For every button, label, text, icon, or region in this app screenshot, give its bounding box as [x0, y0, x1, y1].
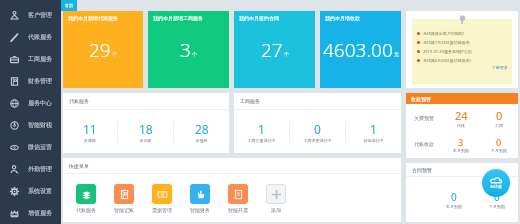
button[interactable]: 我的本月新增代账服务 [63, 11, 143, 88]
staticText: 无忧账 [490, 184, 502, 189]
staticText: 未建账 [63, 138, 117, 143]
staticText: 3 [180, 37, 191, 63]
button[interactable]: 客户管理 [0, 4, 61, 26]
staticText: 0 [314, 121, 321, 137]
staticText: 添加 [257, 207, 295, 213]
staticText: 我的本月新增工商服务 [153, 15, 203, 21]
staticText: 我的本月新增代账服务 [68, 15, 118, 21]
staticText: 0 [451, 190, 457, 204]
staticText: 下月到期 [489, 204, 505, 209]
staticText: 个 [112, 51, 117, 57]
staticText: 4603.00 [323, 37, 393, 63]
staticText: 元 [394, 51, 399, 57]
button[interactable]: 28 [174, 121, 229, 143]
staticText: 代账收款 [414, 141, 434, 147]
staticText: 工商变更进行中 [290, 138, 345, 143]
staticText: 收款预警 [411, 96, 431, 102]
button[interactable]: 1 [346, 121, 401, 143]
button[interactable]: 无忧账6月20日新功能发布! [417, 56, 471, 65]
button[interactable]: 智能记账 [105, 184, 143, 213]
staticText: 票据管理 [143, 207, 181, 213]
staticText: 无忧账推出客户功能啦! [423, 31, 465, 36]
staticText: 我的本月签约合同 [239, 15, 279, 21]
button[interactable]: 服务中心 [0, 92, 61, 114]
staticText: 工商服务 [28, 55, 52, 63]
button[interactable]: 系统设置 [0, 180, 61, 202]
button[interactable]: 代账服务 [0, 26, 61, 48]
button[interactable]: 智能财务 [181, 184, 219, 213]
staticText: 11 [83, 121, 97, 137]
staticText: 其他进行中 [346, 138, 401, 143]
staticText: 29 [89, 37, 111, 63]
button[interactable]: 首页 [61, 0, 77, 11]
button[interactable]: 我的本月新增工商服务 [148, 11, 229, 88]
staticText: 0 [494, 190, 500, 204]
button[interactable]: 微信运营 [0, 136, 61, 158]
button[interactable]: 智能财税 [0, 114, 61, 136]
staticText: 微信运营 [28, 143, 52, 151]
staticText: 未报税 [174, 138, 229, 143]
staticText: 2019-07-20服务器维护公告 [423, 49, 472, 54]
staticText: 智能记账 [105, 207, 143, 213]
staticText: 欠费预警 [414, 115, 434, 121]
button[interactable]: 无忧账推出客户功能啦! [417, 29, 465, 38]
staticText: 本月到期 [446, 204, 462, 209]
staticText: 个 [192, 51, 197, 57]
staticText: 1 [258, 121, 265, 137]
button[interactable]: 无忧账7月25日新功能发布 [417, 38, 470, 47]
staticText: 智能财务 [181, 207, 219, 213]
staticText: 18 [139, 121, 153, 137]
staticText: 无忧账7月25日新功能发布 [423, 40, 470, 45]
button[interactable]: 18 [118, 121, 173, 143]
staticText: 代账服务 [67, 207, 105, 213]
staticText: 智能开票 [219, 207, 257, 213]
staticText: 24 [455, 108, 468, 123]
button[interactable]: 2019-07-20服务器维护公告 [417, 47, 472, 56]
staticText: 代账服务 [28, 33, 52, 41]
staticText: 工商 [495, 123, 503, 128]
button[interactable]: 财务管理 [0, 70, 61, 92]
staticText: 工商服务 [240, 98, 260, 104]
staticText: 下月到期 [491, 148, 507, 153]
button[interactable]: 智能开票 [219, 184, 257, 213]
button[interactable]: 工商服务 [0, 48, 61, 70]
button[interactable]: 外勤管理 [0, 158, 61, 180]
staticText: 0 [496, 136, 502, 148]
button[interactable]: 添加 [257, 184, 295, 213]
staticText: 27 [261, 37, 283, 63]
staticText: 本月到期 [453, 148, 469, 153]
button[interactable]: 了解更多 [492, 65, 508, 70]
staticText: 快捷菜单 [69, 163, 89, 169]
staticText: 服务中心 [28, 99, 52, 107]
staticText: 智能财税 [28, 121, 52, 129]
button[interactable]: 1 [234, 121, 289, 143]
staticText: 增值服务 [28, 209, 52, 217]
staticText: 代账服务 [69, 98, 89, 104]
staticText: 合同预警 [412, 167, 432, 173]
button[interactable]: 欠费预警 [406, 105, 518, 131]
staticText: 代账 [457, 123, 465, 128]
button[interactable]: 我的本月增收款 [320, 11, 401, 88]
staticText: 系统设置 [28, 187, 52, 195]
button[interactable]: 无忧账云服务 [482, 169, 510, 197]
button[interactable]: 增值服务 [0, 202, 61, 224]
staticText: 外勤管理 [28, 165, 52, 173]
staticText: 无忧账6月20日新功能发布! [423, 58, 471, 63]
staticText: 28 [195, 121, 209, 137]
button[interactable]: 0 [290, 121, 345, 143]
button[interactable]: 代账收款 [406, 131, 518, 157]
staticText: 首页 [65, 3, 73, 8]
staticText: 客户管理 [28, 11, 52, 19]
staticText: 0 [496, 108, 503, 123]
button[interactable]: 票据管理 [143, 184, 181, 213]
staticText: 工商注册进行中 [234, 138, 289, 143]
staticText: 我的本月增收款 [325, 15, 360, 21]
staticText: 3 [458, 136, 464, 148]
button[interactable]: 代账服务 [67, 184, 105, 213]
staticText: 财务管理 [28, 77, 52, 85]
staticText: 个 [284, 51, 289, 57]
staticText: 未记账 [118, 138, 173, 143]
button[interactable]: 我的本月签约合同 [234, 11, 315, 88]
staticText: 1 [370, 121, 377, 137]
button[interactable]: 11 [63, 121, 117, 143]
